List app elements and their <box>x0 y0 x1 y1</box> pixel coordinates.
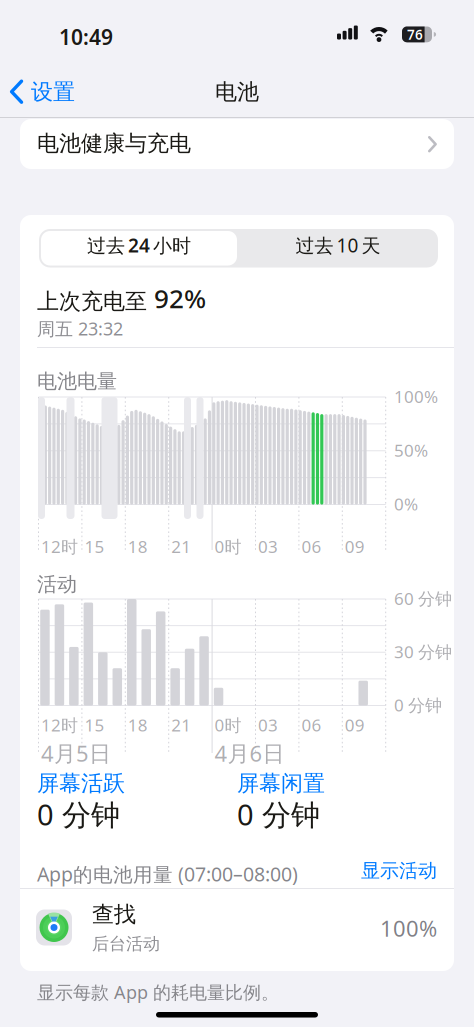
staticText: 显示每款 App 的耗电量比例。 <box>37 980 279 1004</box>
staticText: 设置 <box>31 78 75 105</box>
staticText: App的电池用量 (07:00–08:00) <box>37 861 298 887</box>
staticText: 0 分钟 <box>394 693 442 716</box>
staticText: 15 <box>84 713 104 736</box>
staticText: 06 <box>301 713 321 736</box>
staticText: 屏幕活跃 <box>37 770 125 797</box>
staticText: 活动 <box>37 572 77 597</box>
staticText: 0 分钟 <box>37 795 120 833</box>
staticText: 76 <box>407 25 423 43</box>
staticText: 显示活动 <box>361 859 437 882</box>
staticText: 过去 10 天 <box>295 233 380 258</box>
staticText: 18 <box>128 713 148 736</box>
staticText: 12时 <box>41 535 78 558</box>
staticText: 查找 <box>92 901 136 928</box>
staticText: 4月5日 <box>41 738 111 768</box>
staticText: 屏幕闲置 <box>237 770 325 797</box>
staticText: 0时 <box>215 535 242 558</box>
button[interactable]: 设置 <box>0 73 75 111</box>
staticText: 0 分钟 <box>237 795 320 833</box>
button[interactable]: 过去 24 小时 <box>41 231 237 265</box>
staticText: 03 <box>258 713 278 736</box>
staticText: 10:49 <box>59 23 113 51</box>
staticText: 上次充电至 92% <box>37 281 206 315</box>
staticText: 30 分钟 <box>394 640 452 663</box>
button[interactable]: 查找 <box>20 891 454 971</box>
staticText: 过去 24 小时 <box>87 233 191 258</box>
button[interactable]: 电池健康与充电 <box>20 119 454 169</box>
staticText: 21 <box>171 713 191 736</box>
staticText: 15 <box>84 535 104 558</box>
staticText: 周五 23:32 <box>37 316 123 340</box>
staticText: 0时 <box>215 713 242 736</box>
staticText: 电池健康与充电 <box>37 130 191 157</box>
staticText: 0% <box>394 492 418 515</box>
button[interactable]: 显示活动 <box>317 859 437 882</box>
staticText: 50% <box>394 439 428 461</box>
staticText: 09 <box>345 713 365 736</box>
staticText: 60 分钟 <box>394 587 452 610</box>
staticText: 4月6日 <box>215 738 285 768</box>
staticText: 06 <box>301 535 321 558</box>
button[interactable]: 过去 10 天 <box>240 231 436 265</box>
staticText: 100% <box>380 913 437 943</box>
staticText: 100% <box>394 385 438 408</box>
staticText: 12时 <box>41 713 78 736</box>
staticText: 21 <box>171 535 191 558</box>
staticText: 电池 <box>215 78 259 105</box>
staticText: 电池电量 <box>37 369 117 394</box>
staticText: 18 <box>128 535 148 558</box>
staticText: 09 <box>345 535 365 558</box>
staticText: 后台活动 <box>92 933 160 954</box>
staticText: 03 <box>258 535 278 558</box>
